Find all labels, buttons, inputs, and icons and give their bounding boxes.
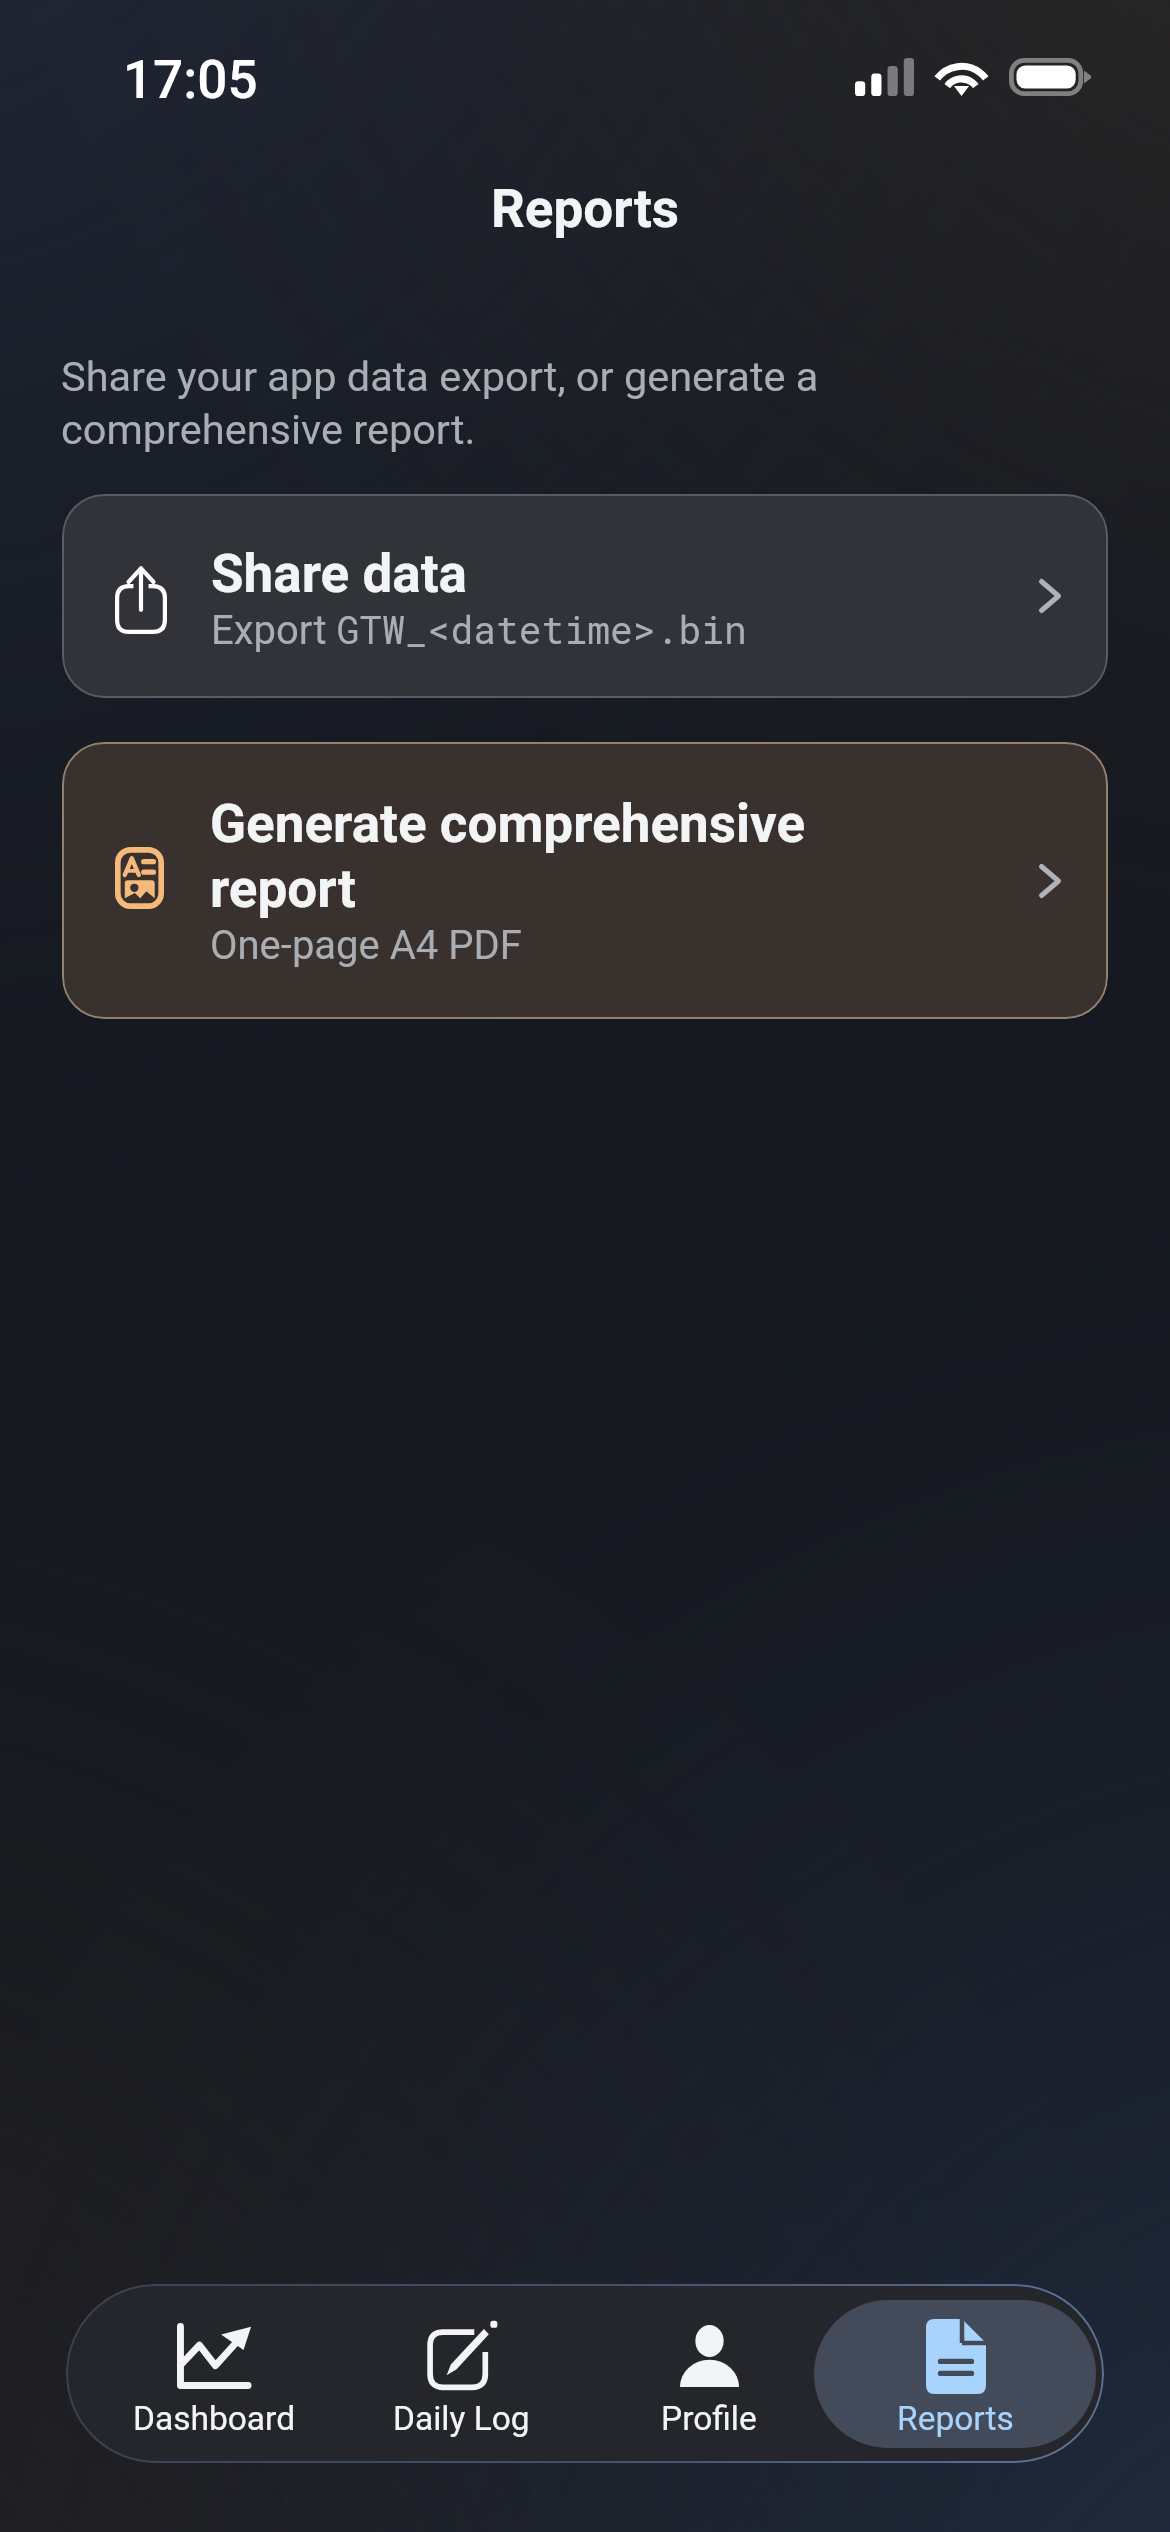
button[interactable]: Share data: [62, 494, 1108, 698]
button[interactable]: Dashboard: [91, 2284, 338, 2463]
button[interactable]: Profile: [585, 2284, 832, 2463]
button[interactable]: Daily Log: [338, 2284, 585, 2463]
staticText: Daily Log: [393, 2399, 530, 2438]
staticText: Reports: [491, 178, 680, 240]
staticText: Export GTW_<datetime>.bin: [211, 604, 747, 654]
button[interactable]: Generate comprehensive report: [62, 742, 1108, 1019]
staticText: Share data: [211, 543, 468, 605]
staticText: Generate comprehensive report: [210, 793, 889, 920]
button[interactable]: Reports: [832, 2284, 1079, 2463]
staticText: 17:05: [123, 49, 258, 111]
staticText: One-page A4 PDF: [210, 922, 522, 969]
staticText: Profile: [661, 2399, 757, 2438]
staticText: Share your app data export, or generate …: [61, 352, 875, 454]
staticText: Dashboard: [133, 2399, 296, 2438]
staticText: Reports: [897, 2399, 1014, 2438]
